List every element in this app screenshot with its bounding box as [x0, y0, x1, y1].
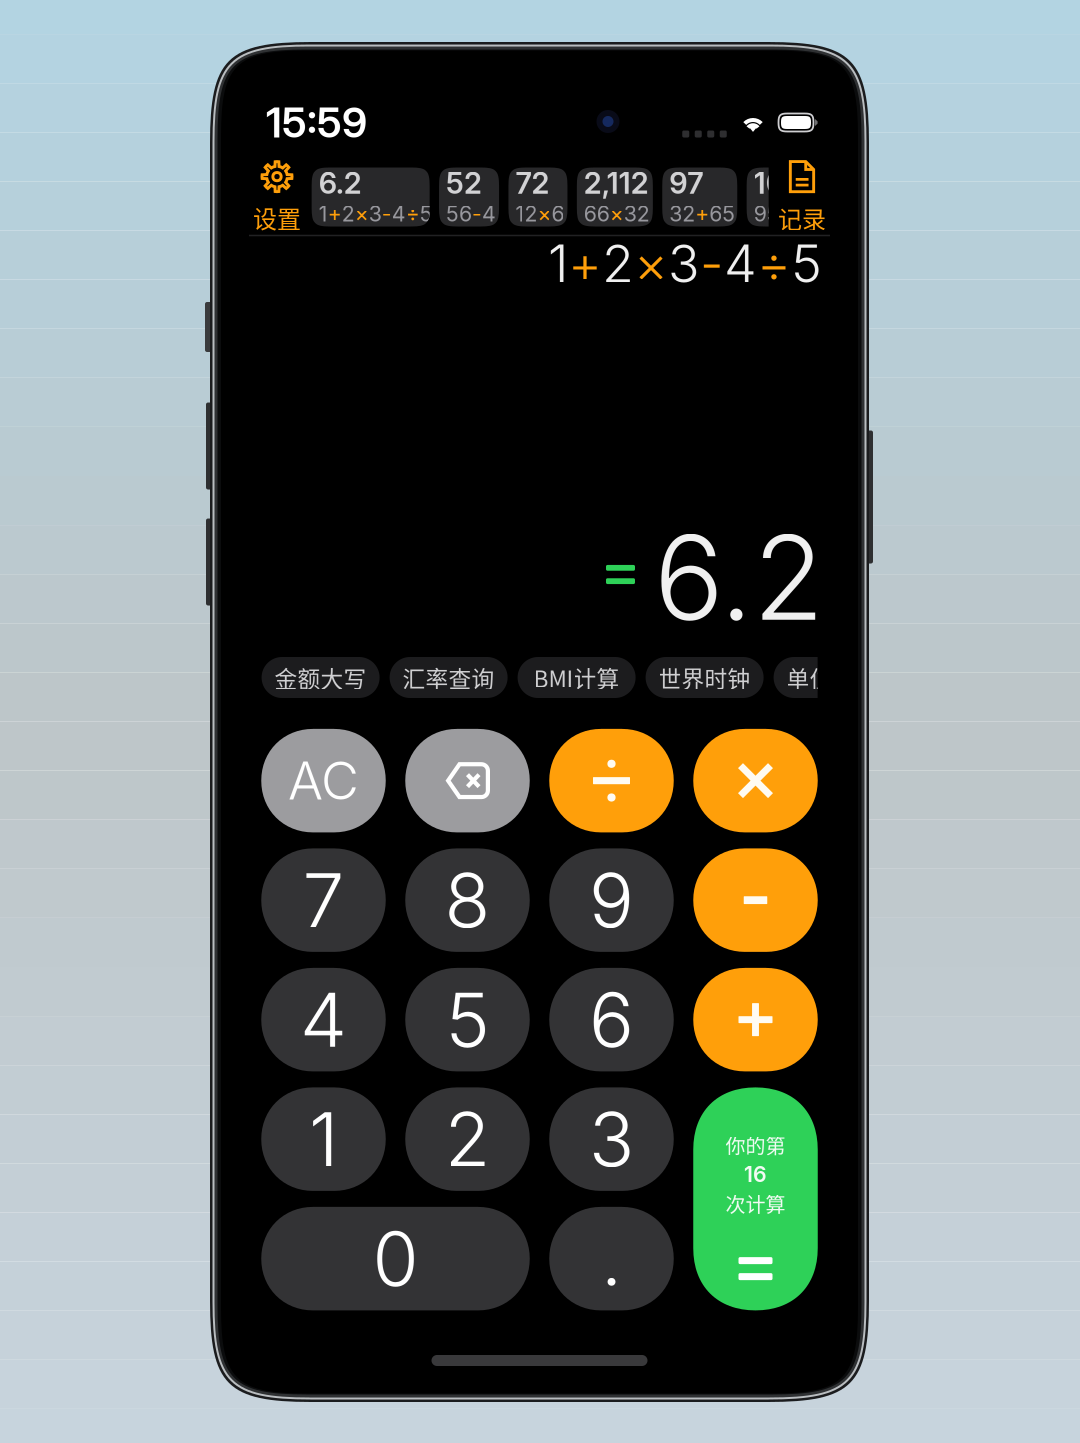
staticText: - [382, 201, 392, 227]
staticText: 15:59 [266, 97, 367, 147]
staticText: 10 [754, 165, 785, 201]
button[interactable]: AC [261, 729, 386, 832]
staticText: 9 [754, 201, 767, 227]
staticText: 2 [444, 1094, 490, 1184]
staticText: 6 [589, 974, 634, 1065]
staticText: 4 [724, 232, 757, 295]
staticText: 2,112 [584, 165, 649, 201]
staticText: 金额大写 [275, 661, 367, 694]
button[interactable]: 乘 [693, 729, 818, 832]
button[interactable]: 金额大写 [262, 657, 380, 698]
staticText: 2 [342, 201, 355, 227]
staticText: × [634, 232, 668, 295]
staticText: 16 [744, 1161, 767, 1187]
button[interactable]: 6 [549, 968, 674, 1071]
button[interactable]: 5 [405, 968, 530, 1071]
button[interactable]: 减 [693, 848, 818, 952]
staticText: 9 [589, 855, 634, 945]
button[interactable]: 删除 [405, 729, 530, 832]
staticText: × [355, 201, 369, 227]
staticText: 3 [668, 232, 700, 295]
staticText: 8 [444, 855, 490, 945]
staticText: 5 [420, 201, 433, 227]
staticText: 你的第 [725, 1130, 785, 1159]
button[interactable]: 9 [549, 848, 674, 952]
staticText: × [610, 201, 624, 227]
staticText: - [472, 201, 482, 227]
staticText: ÷ [406, 201, 420, 227]
staticText: 1 [319, 201, 328, 227]
staticText: 3 [369, 201, 382, 227]
staticText: 6 [551, 201, 564, 227]
staticText: 2 [524, 201, 537, 227]
button[interactable]: 加 [693, 968, 818, 1071]
staticText: 2 [682, 201, 695, 227]
staticText: ÷ [757, 232, 791, 295]
staticText: 2 [602, 232, 634, 295]
staticText: 3 [624, 201, 637, 227]
staticText: 5 [446, 201, 459, 227]
staticText: 6.2 [319, 165, 362, 201]
staticText: 6 [459, 201, 472, 227]
button[interactable]: 97 [662, 167, 737, 226]
staticText: 2 [637, 201, 650, 227]
staticText: 6 [584, 201, 597, 227]
staticText: 5 [791, 232, 822, 295]
button[interactable]: 0 [261, 1207, 530, 1310]
staticText: . [601, 1213, 622, 1304]
button[interactable]: 汇率查询 [390, 657, 508, 698]
button[interactable]: 3 [549, 1087, 674, 1191]
staticText: 世界时钟 [659, 661, 751, 694]
button[interactable]: . [549, 1207, 674, 1310]
staticText: BMI计算 [534, 661, 620, 694]
staticText: 6 [597, 201, 610, 227]
staticText: 5 [722, 201, 735, 227]
button[interactable]: BMI计算 [518, 657, 636, 698]
button[interactable]: 6.2 [312, 167, 430, 226]
button[interactable]: 2 [405, 1087, 530, 1191]
staticText: 1 [309, 1094, 338, 1184]
button[interactable]: 8 [405, 848, 530, 952]
staticText: 汇率查询 [403, 661, 495, 694]
button[interactable]: 52 [439, 167, 499, 226]
staticText: 设置 [253, 200, 301, 235]
staticText: 3 [669, 201, 682, 227]
staticText: + [328, 201, 342, 227]
button[interactable]: 你的第 [693, 1087, 818, 1310]
button[interactable]: 单位换算 [774, 657, 892, 698]
staticText: 4 [300, 974, 347, 1065]
staticText: - [700, 232, 724, 295]
staticText: + [695, 201, 709, 227]
staticText: 次计算 [725, 1189, 785, 1218]
button[interactable]: 4 [261, 968, 386, 1071]
button[interactable]: 除 [549, 729, 674, 832]
staticText: 7 [302, 855, 344, 945]
staticText: 4 [482, 201, 496, 227]
staticText: 97 [669, 165, 703, 201]
staticText: 单位换算 [787, 661, 879, 694]
button[interactable]: 1 [261, 1087, 386, 1191]
staticText: 5 [767, 201, 780, 227]
staticText: 1 [515, 201, 524, 227]
staticText: AC [288, 749, 359, 812]
staticText: 0 [372, 1213, 418, 1304]
staticText: 记录 [778, 201, 826, 235]
button[interactable]: 记录 [770, 164, 834, 230]
staticText: 3 [589, 1094, 634, 1184]
button[interactable]: 10 [747, 167, 807, 226]
staticText: 1 [548, 232, 568, 295]
staticText: 6.2 [654, 507, 824, 648]
button[interactable]: 72 [508, 167, 567, 226]
button[interactable]: 2,112 [577, 167, 653, 226]
staticText: + [568, 232, 602, 295]
staticText: 5 [445, 974, 489, 1065]
staticText: × [537, 201, 551, 227]
button[interactable]: 设置 [245, 164, 309, 230]
button[interactable]: 7 [261, 848, 386, 952]
button[interactable]: 世界时钟 [646, 657, 764, 698]
staticText: 52 [446, 165, 482, 201]
staticText: 72 [515, 165, 549, 201]
staticText: 4 [392, 201, 406, 227]
staticText: 6 [709, 201, 722, 227]
